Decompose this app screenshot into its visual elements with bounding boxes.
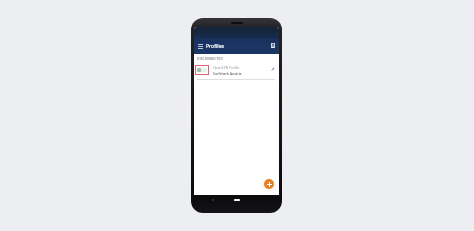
staticText: Surfshark Austria xyxy=(213,71,242,75)
button[interactable]: Edit profile xyxy=(269,65,276,72)
button[interactable]: Connection toggle xyxy=(195,65,209,75)
button[interactable]: Import profile xyxy=(270,42,276,48)
staticText: Profiles xyxy=(206,43,225,50)
button[interactable]: Add profile xyxy=(264,179,274,189)
staticText: OpenVPN Profile xyxy=(213,65,240,70)
button[interactable]: Connection toggle xyxy=(194,65,279,75)
staticText: DISCONNECTED xyxy=(197,57,223,61)
button[interactable]: Open navigation menu xyxy=(197,43,204,50)
